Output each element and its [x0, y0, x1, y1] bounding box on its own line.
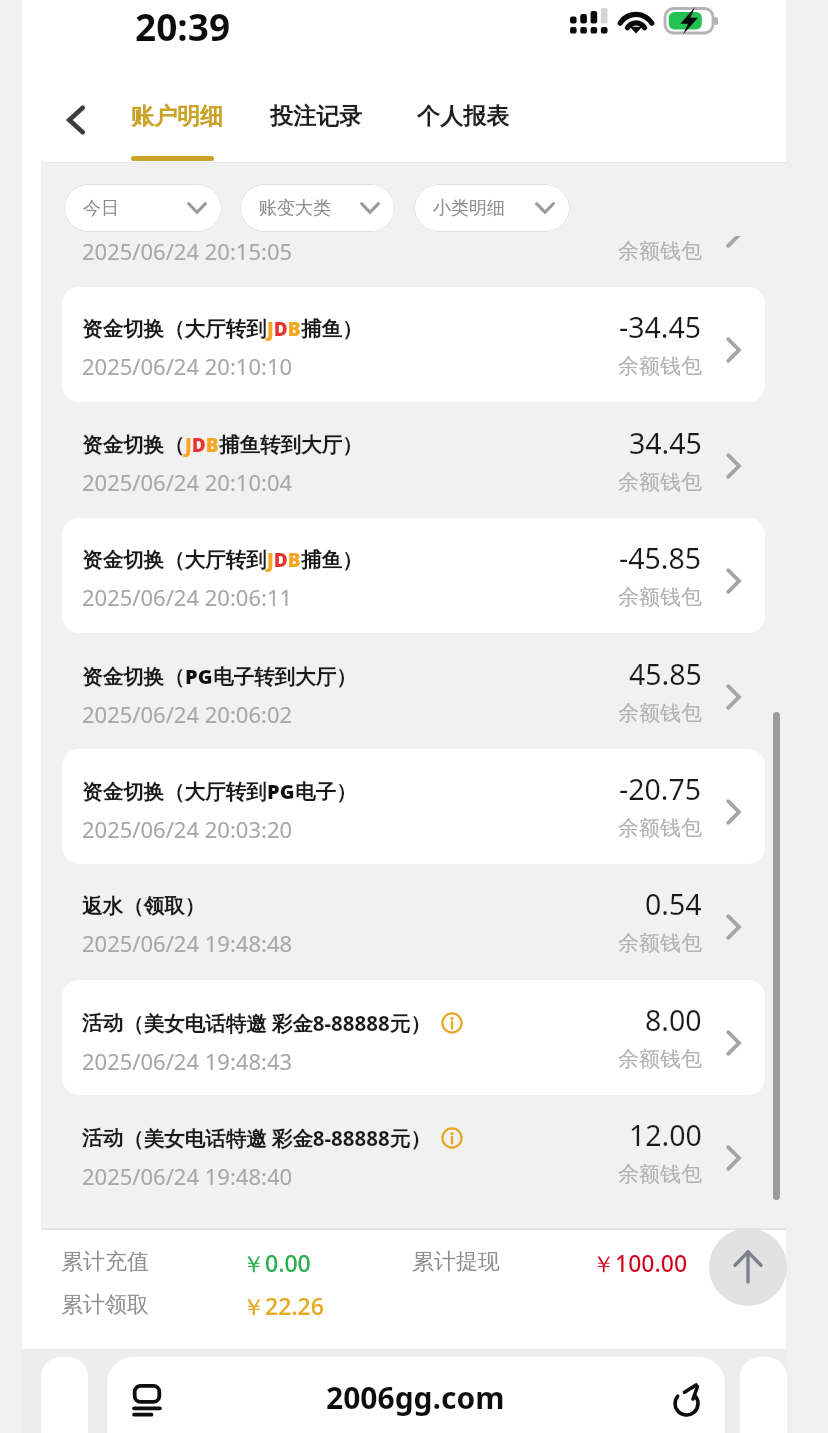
staticText: -34.45	[619, 308, 702, 347]
staticText: -45.85	[619, 539, 702, 578]
staticText: 8.00	[645, 1001, 702, 1040]
staticText: 45.85	[629, 655, 702, 694]
button[interactable]: 资金切换	[62, 236, 765, 287]
staticText: 余额钱包	[618, 1161, 702, 1187]
button[interactable]: 活动	[62, 980, 765, 1095]
staticText: （美女电话特邀 彩金8-88888元）	[123, 1124, 431, 1152]
staticText: 余额钱包	[618, 1046, 702, 1072]
staticText: 余额钱包	[618, 238, 702, 264]
staticText: 捕鱼转到大厅）	[219, 432, 363, 458]
staticText: 2025/06/24 20:06:11	[82, 582, 293, 612]
button[interactable]: 资金切换	[62, 518, 765, 633]
staticText: 2025/06/24 20:10:04	[82, 467, 293, 497]
staticText: 小类明细	[433, 197, 505, 220]
button[interactable]: 资金切换	[62, 749, 765, 864]
staticText: PG	[185, 663, 213, 690]
staticText: PG	[267, 778, 295, 805]
staticText: （大厅转到	[164, 779, 267, 805]
button[interactable]: 账户明细	[131, 78, 223, 163]
staticText: 电子）	[295, 779, 357, 805]
staticText: -20.75	[619, 770, 702, 809]
staticText: （领取）	[123, 893, 205, 919]
staticText: 余额钱包	[618, 815, 702, 841]
staticText: 2025/06/24 20:06:02	[82, 699, 293, 729]
staticText: 个人报表	[417, 102, 509, 131]
staticText: 余额钱包	[618, 584, 702, 610]
button[interactable]: 返水	[62, 864, 765, 979]
staticText: （	[164, 432, 185, 458]
button[interactable]: Reload	[664, 1375, 712, 1423]
staticText: ￥100.00	[592, 1247, 688, 1278]
staticText: 余额钱包	[618, 353, 702, 379]
staticText: 2025/06/24 20:03:20	[82, 814, 293, 844]
staticText: 余额钱包	[618, 930, 702, 956]
staticText: 账变大类	[259, 197, 331, 220]
button[interactable]: 资金切换	[62, 287, 765, 402]
staticText: 资金切换	[82, 664, 164, 690]
staticText: 捕鱼）	[301, 547, 363, 573]
button[interactable]: Scroll to top	[709, 1228, 787, 1306]
button[interactable]: 资金切换	[62, 403, 765, 518]
staticText: JDB	[267, 547, 301, 573]
staticText: 2006gg.com	[326, 1377, 505, 1418]
staticText: JDB	[185, 432, 219, 458]
staticText: 12.00	[629, 1116, 702, 1155]
button[interactable]: 个人报表	[417, 78, 509, 163]
staticText: 资金切换	[82, 316, 164, 342]
staticText: 2025/06/24 20:10:10	[82, 351, 293, 381]
staticText: 资金切换	[82, 432, 164, 458]
staticText: 20:39	[135, 1, 231, 51]
button[interactable]: 账变大类	[240, 184, 395, 232]
staticText: 2025/06/24 19:48:43	[82, 1046, 293, 1076]
button[interactable]: 资金切换	[62, 634, 765, 749]
staticText: 34.45	[629, 424, 702, 463]
staticText: 活动	[82, 1125, 123, 1151]
button[interactable]: 活动	[62, 1095, 765, 1210]
staticText: 2025/06/24 20:15:05	[82, 236, 293, 266]
staticText: 余额钱包	[618, 469, 702, 495]
staticText: 账户明细	[131, 102, 223, 131]
staticText: 0.54	[645, 885, 702, 924]
staticText: （大厅转到	[164, 316, 267, 342]
staticText: ￥0.00	[242, 1247, 311, 1278]
staticText: 资金切换	[82, 547, 164, 573]
staticText: 2025/06/24 19:48:40	[82, 1161, 293, 1191]
staticText: 活动	[82, 1010, 123, 1036]
staticText: 今日	[83, 197, 119, 220]
staticText: 2025/06/24 19:48:48	[82, 928, 293, 958]
staticText: 电子转到大厅）	[213, 664, 357, 690]
staticText: 资金切换	[82, 779, 164, 805]
button[interactable]: Tabs	[123, 1376, 171, 1424]
button[interactable]: 小类明细	[414, 184, 570, 232]
staticText: ￥22.26	[242, 1290, 324, 1321]
staticText: 累计充值	[61, 1248, 149, 1276]
button[interactable]: 今日	[64, 184, 222, 232]
staticText: 余额钱包	[618, 700, 702, 726]
staticText: JDB	[267, 316, 301, 342]
staticText: （美女电话特邀 彩金8-88888元）	[123, 1009, 431, 1037]
staticText: 投注记录	[270, 102, 362, 131]
button[interactable]: Back	[47, 91, 105, 149]
staticText: 累计领取	[61, 1291, 149, 1319]
button[interactable]: 投注记录	[270, 78, 362, 163]
staticText: 累计提现	[412, 1248, 500, 1276]
staticText: （大厅转到	[164, 547, 267, 573]
staticText: 捕鱼）	[301, 316, 363, 342]
staticText: 返水	[82, 893, 123, 919]
staticText: （	[164, 664, 185, 690]
